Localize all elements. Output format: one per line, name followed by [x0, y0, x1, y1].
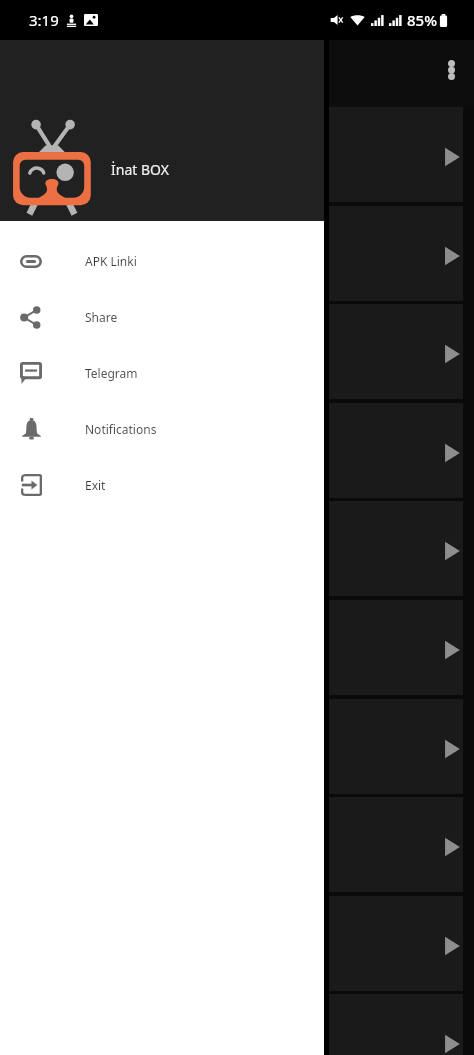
staticText: Notifications — [85, 421, 157, 437]
button[interactable]: İnat BOX — [0, 40, 324, 221]
button[interactable] — [0, 501, 474, 599]
button[interactable] — [0, 896, 474, 994]
button[interactable] — [0, 600, 474, 698]
button[interactable] — [0, 403, 474, 501]
staticText: 3:19 — [29, 10, 59, 30]
button[interactable] — [0, 994, 474, 1055]
button[interactable]: Telegram — [0, 345, 324, 401]
staticText: 85% — [407, 10, 437, 30]
staticText: Share — [85, 309, 118, 325]
button[interactable]: APK Linki — [0, 233, 324, 289]
button[interactable]: Exit — [0, 457, 324, 513]
staticText: Exit — [85, 477, 106, 493]
button[interactable] — [0, 304, 474, 402]
button[interactable] — [0, 699, 474, 797]
staticText: Telegram — [85, 365, 138, 381]
staticText: İnat BOX — [111, 160, 169, 179]
staticText: APK Linki — [85, 253, 137, 269]
button[interactable] — [0, 797, 474, 895]
button[interactable] — [0, 206, 474, 304]
button[interactable]: More options — [431, 50, 471, 90]
button[interactable]: Notifications — [0, 401, 324, 457]
button[interactable]: Share — [0, 289, 324, 345]
button[interactable] — [0, 107, 474, 205]
